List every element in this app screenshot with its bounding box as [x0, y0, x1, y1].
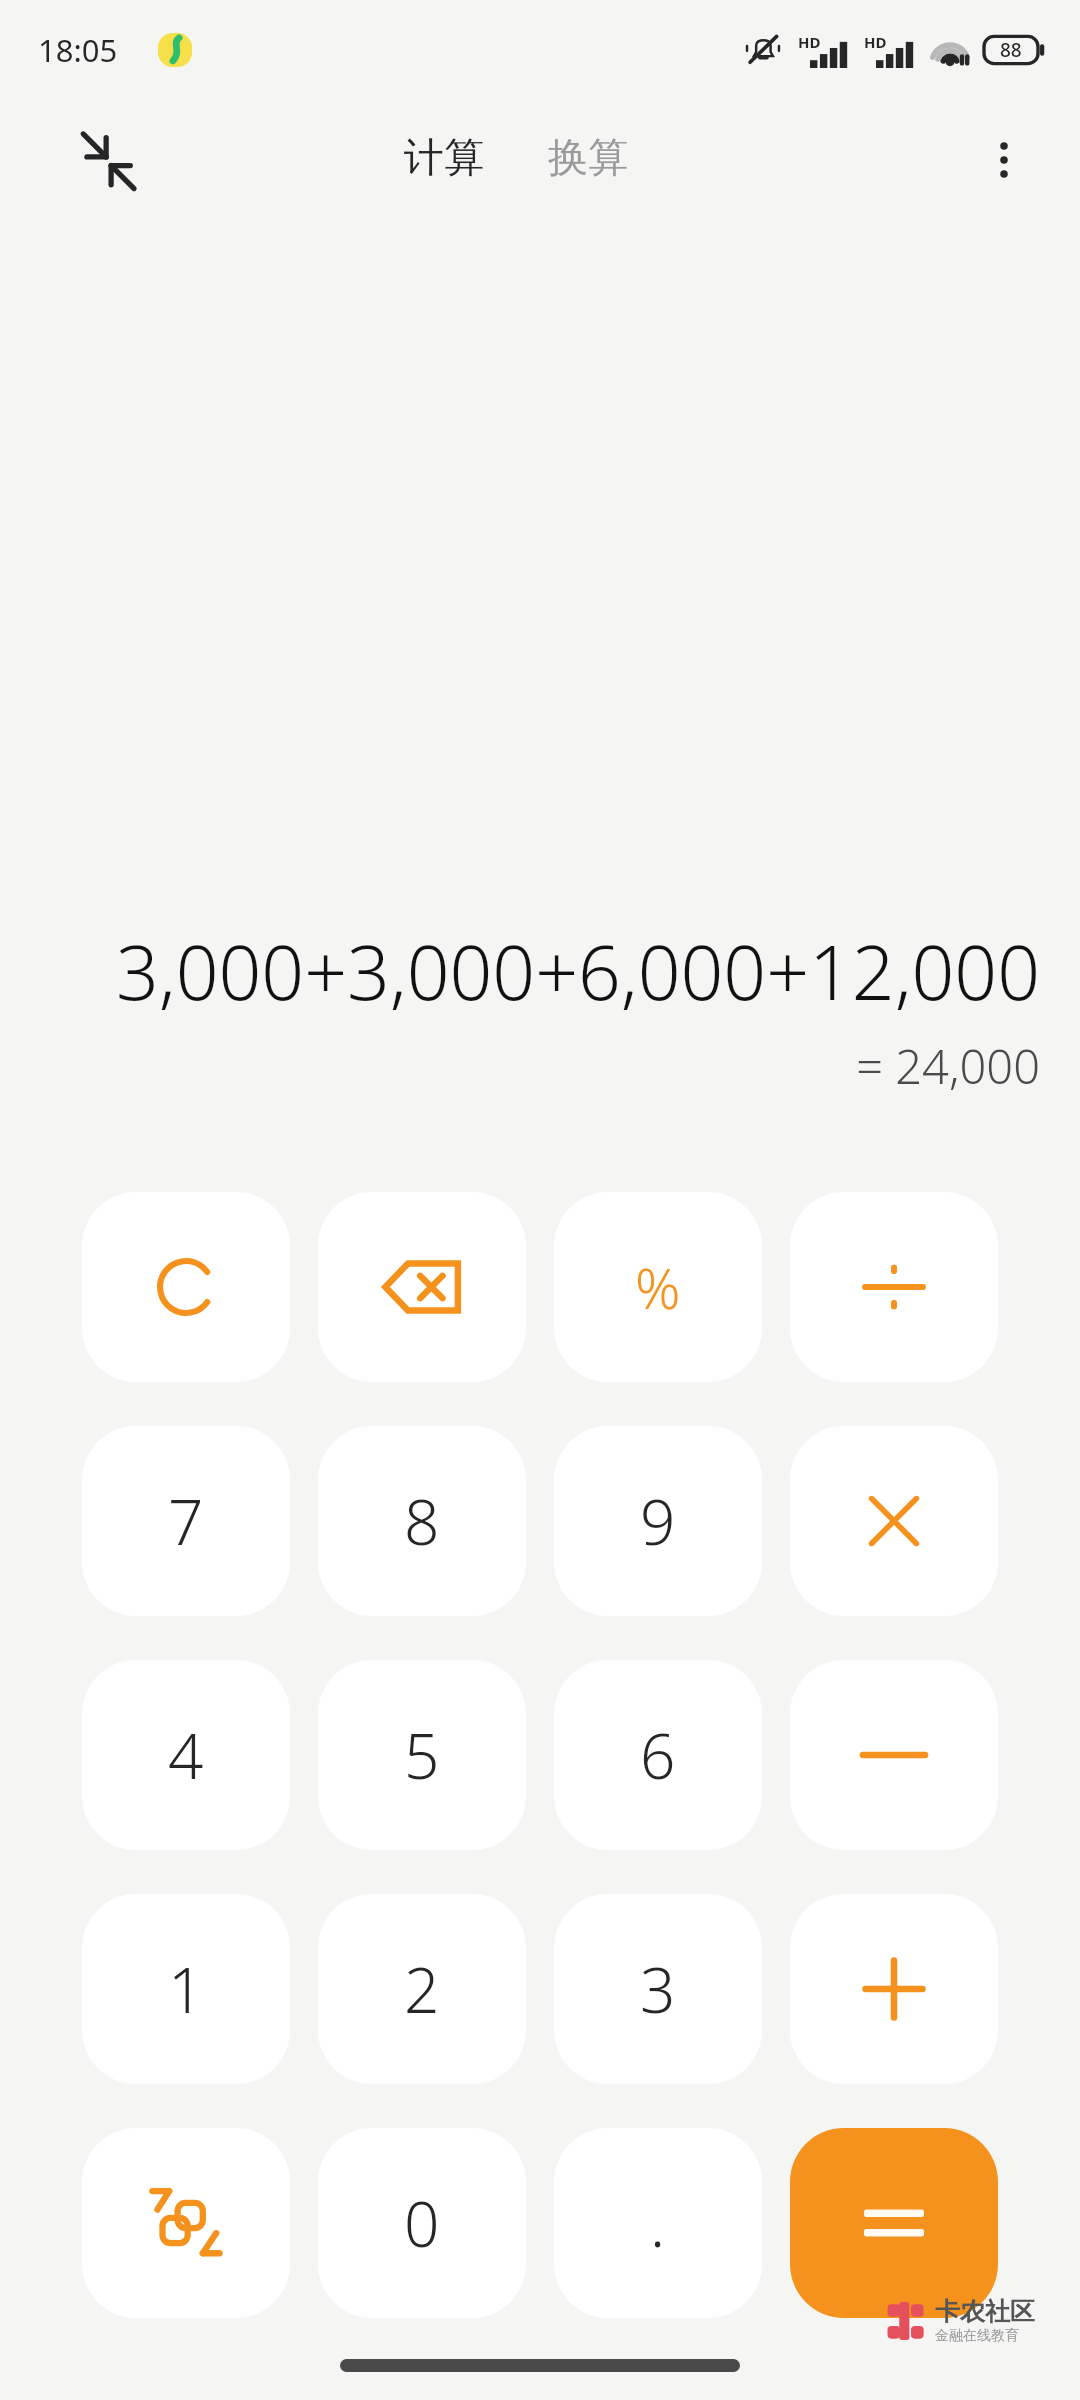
button[interactable]: .: [554, 2128, 762, 2318]
staticText: 6: [640, 1713, 676, 1797]
staticText: 9: [640, 1479, 676, 1563]
staticText: 7: [168, 1479, 204, 1563]
button[interactable]: 2: [318, 1894, 526, 2084]
staticText: %: [635, 1249, 681, 1325]
staticText: 0: [404, 2181, 440, 2265]
button[interactable]: 5: [318, 1660, 526, 1850]
staticText: 2: [404, 1947, 440, 2031]
staticText: 1: [168, 1947, 204, 2031]
button[interactable]: Backspace: [318, 1192, 526, 1382]
button[interactable]: 6: [554, 1660, 762, 1850]
staticText: 计算: [404, 132, 484, 182]
staticText: 3: [640, 1947, 676, 2031]
staticText: 金融在线教育: [935, 2327, 1019, 2345]
button[interactable]: Divide: [790, 1192, 998, 1382]
button[interactable]: Scientific functions: [82, 2128, 290, 2318]
button[interactable]: Percent: [554, 1192, 762, 1382]
button[interactable]: More options: [956, 112, 1052, 208]
staticText: HD: [864, 32, 887, 52]
staticText: 88: [1000, 37, 1022, 63]
staticText: 5: [404, 1713, 440, 1797]
button[interactable]: 4: [82, 1660, 290, 1850]
button[interactable]: Clear: [82, 1192, 290, 1382]
staticText: = 24,000: [856, 1034, 1040, 1098]
staticText: .: [650, 2181, 666, 2265]
button[interactable]: 0: [318, 2128, 526, 2318]
button[interactable]: 7: [82, 1426, 290, 1616]
button[interactable]: Equals: [790, 2128, 998, 2318]
button[interactable]: 计算: [390, 120, 498, 194]
button[interactable]: Collapse: [60, 112, 156, 208]
button[interactable]: Plus: [790, 1894, 998, 2084]
staticText: 4: [168, 1713, 204, 1797]
button[interactable]: 8: [318, 1426, 526, 1616]
staticText: 3,000+3,000+6,000+12,000: [115, 920, 1040, 1022]
button[interactable]: 3: [554, 1894, 762, 2084]
button[interactable]: 9: [554, 1426, 762, 1616]
button[interactable]: 1: [82, 1894, 290, 2084]
button[interactable]: Multiply: [790, 1426, 998, 1616]
staticText: 18:05: [38, 29, 118, 71]
button[interactable]: Minus: [790, 1660, 998, 1850]
staticText: HD: [798, 32, 821, 52]
button[interactable]: 换算: [534, 120, 642, 194]
staticText: 卡农社区: [935, 2296, 1035, 2327]
staticText: 换算: [548, 132, 628, 182]
staticText: 8: [404, 1479, 440, 1563]
